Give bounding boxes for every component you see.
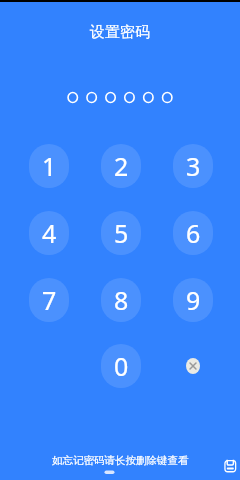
staticText: 9 <box>186 283 201 317</box>
staticText: 8 <box>114 283 129 317</box>
button[interactable]: 8 <box>101 278 141 322</box>
button[interactable]: 7 <box>29 278 69 322</box>
button[interactable]: 5 <box>101 211 141 255</box>
button[interactable]: 1 <box>29 144 69 188</box>
button[interactable]: Delete <box>173 344 213 388</box>
staticText: 2 <box>114 149 129 183</box>
button[interactable]: Saved passwords <box>222 458 238 475</box>
staticText: 0 <box>114 349 129 383</box>
button[interactable]: 4 <box>29 211 69 255</box>
button[interactable]: 2 <box>101 144 141 188</box>
staticText: 1 <box>42 149 57 183</box>
staticText: 5 <box>114 216 129 250</box>
staticText: 7 <box>42 283 57 317</box>
button[interactable]: 3 <box>173 144 213 188</box>
staticText: 设置密码 <box>90 23 150 42</box>
button[interactable]: 9 <box>173 278 213 322</box>
button[interactable]: 0 <box>101 344 141 388</box>
button[interactable]: 6 <box>173 211 213 255</box>
staticText: 如忘记密码请长按删除键查看 <box>52 454 189 467</box>
staticText: 3 <box>186 149 201 183</box>
staticText: 4 <box>42 216 57 250</box>
staticText: 6 <box>186 216 201 250</box>
